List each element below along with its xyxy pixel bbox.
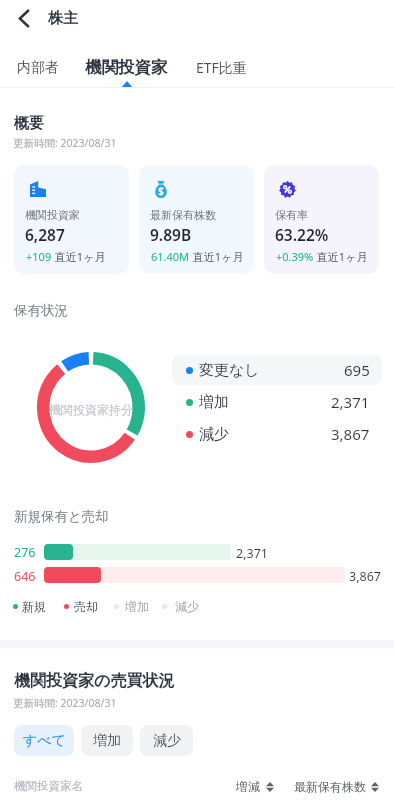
staticText: 61.40M: [151, 249, 190, 264]
staticText: 2,371: [236, 545, 268, 562]
staticText: 変更なし: [199, 361, 260, 380]
staticText: 695: [344, 360, 370, 380]
staticText: ETF比重: [196, 58, 247, 77]
staticText: 2,371: [331, 392, 370, 412]
staticText: 3,867: [331, 424, 370, 444]
staticText: 276: [14, 544, 40, 561]
button[interactable]: 減少: [140, 725, 193, 756]
staticText: 機関投資家名: [14, 779, 83, 793]
staticText: 9.89B: [150, 224, 192, 245]
staticText: 直近1ヶ月: [190, 249, 244, 264]
staticText: 増加: [199, 393, 229, 412]
staticText: +109: [26, 249, 52, 264]
staticText: 3,867: [349, 568, 381, 585]
button[interactable]: 内部者: [9, 53, 67, 83]
button[interactable]: 減少: [172, 419, 382, 449]
button[interactable]: 最新保有株数: [139, 165, 254, 274]
staticText: 更新時間: 2023/08/31: [13, 696, 117, 710]
staticText: 更新時間: 2023/08/31: [13, 136, 117, 150]
other: Sort: [371, 782, 379, 792]
staticText: 直近1ヶ月: [314, 249, 368, 264]
button[interactable]: 保有率: [264, 165, 379, 274]
button[interactable]: 機関投資家: [14, 165, 129, 274]
staticText: 機関投資家の売買状況: [14, 671, 175, 691]
button[interactable]: 最新保有株数: [294, 779, 379, 794]
staticText: 概要: [14, 114, 44, 133]
staticText: 646: [14, 568, 40, 585]
staticText: 保有率: [275, 208, 308, 222]
staticText: すべて: [23, 732, 66, 750]
staticText: 最新保有株数: [294, 779, 366, 794]
button[interactable]: すべて: [14, 725, 74, 756]
staticText: 63.22%: [275, 224, 329, 245]
staticText: 売却: [74, 599, 98, 614]
staticText: 6,287: [25, 224, 65, 245]
staticText: 内部者: [17, 59, 59, 77]
button[interactable]: 増加: [172, 387, 382, 417]
staticText: 増減: [236, 779, 260, 794]
staticText: 保有状況: [14, 302, 68, 319]
button[interactable]: 増加: [81, 725, 133, 756]
staticText: 減少: [153, 732, 181, 750]
staticText: +0.39%: [276, 249, 314, 264]
staticText: 株主: [48, 9, 78, 28]
button[interactable]: 増減: [236, 779, 274, 794]
button[interactable]: Back: [8, 0, 40, 36]
button[interactable]: ETF比重: [188, 52, 255, 83]
staticText: 減少: [175, 599, 199, 614]
button[interactable]: 変更なし: [172, 355, 382, 385]
staticText: 増加: [93, 732, 121, 750]
staticText: 新規保有と売却: [14, 508, 109, 525]
staticText: 機関投資家持分: [49, 402, 133, 417]
staticText: 増加: [125, 599, 149, 614]
staticText: 機関投資家: [85, 57, 168, 78]
button[interactable]: 機関投資家: [77, 52, 176, 83]
staticText: 減少: [199, 425, 229, 444]
other: Sort: [266, 782, 274, 792]
staticText: 機関投資家: [25, 208, 80, 222]
staticText: 直近1ヶ月: [52, 249, 106, 264]
staticText: 新規: [22, 599, 46, 614]
staticText: 最新保有株数: [150, 208, 216, 222]
